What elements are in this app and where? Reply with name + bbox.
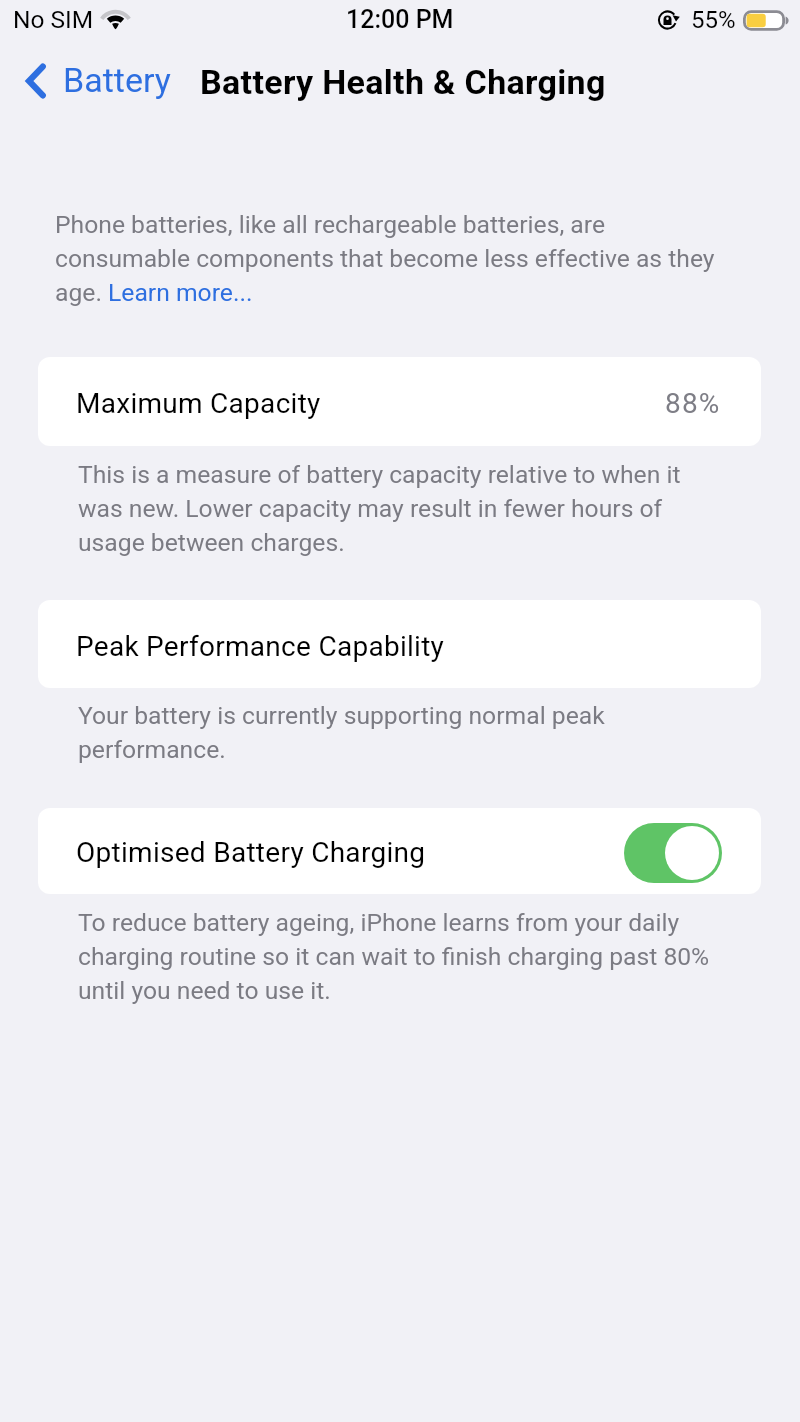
staticText: Phone batteries, like all rechargeable b… (55, 206, 735, 308)
staticText: Optimised Battery Charging (76, 836, 426, 869)
button[interactable]: Optimised Battery Charging (38, 808, 761, 894)
staticText: 55% (691, 6, 736, 34)
button[interactable]: Maximum Capacity (38, 357, 761, 446)
button[interactable]: Optimised Battery Charging (624, 823, 722, 883)
staticText: Your battery is currently supporting nor… (78, 697, 728, 765)
button[interactable]: Battery (0, 53, 183, 107)
staticText: Battery Health & Charging (200, 62, 606, 102)
staticText: 88% (665, 387, 721, 420)
staticText: Maximum Capacity (76, 387, 321, 420)
button[interactable]: Peak Performance Capability (38, 600, 761, 688)
staticText: Battery (63, 60, 171, 100)
staticText: 12:00 PM (346, 5, 454, 34)
staticText: This is a measure of battery capacity re… (78, 456, 728, 558)
staticText: To reduce battery ageing, iPhone learns … (78, 904, 728, 1006)
staticText: Peak Performance Capability (76, 630, 445, 663)
staticText: No SIM (13, 5, 94, 34)
